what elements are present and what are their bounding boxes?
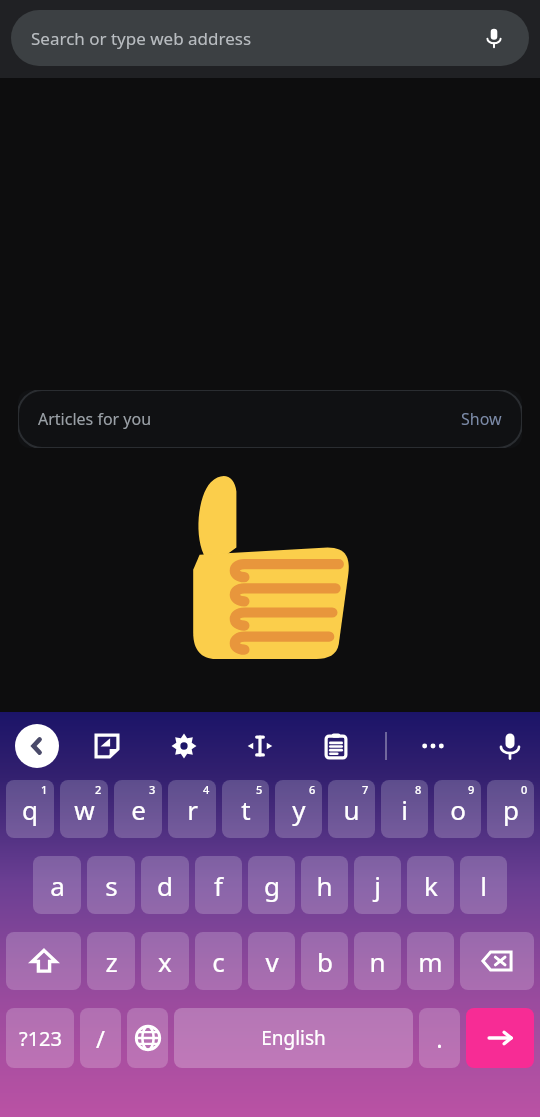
button[interactable]: Stickers <box>85 724 129 768</box>
staticText: a <box>50 868 65 903</box>
staticText: 6 <box>309 782 316 797</box>
staticText: / <box>96 1022 105 1055</box>
button[interactable]: Shift <box>6 932 81 990</box>
staticText: e <box>131 792 146 827</box>
button[interactable]: n <box>354 932 401 990</box>
button[interactable]: g <box>248 856 295 914</box>
button[interactable]: w <box>60 780 108 838</box>
button[interactable]: u <box>328 780 375 838</box>
button[interactable]: / <box>80 1008 121 1068</box>
staticText: 3 <box>149 782 156 797</box>
staticText: q <box>22 792 38 827</box>
button[interactable]: v <box>248 932 295 990</box>
staticText: r <box>187 792 198 827</box>
staticText: j <box>374 868 381 903</box>
staticText: i <box>401 792 408 827</box>
button[interactable]: h <box>301 856 348 914</box>
staticText: 9 <box>468 782 475 797</box>
button[interactable]: f <box>195 856 242 914</box>
staticText: o <box>450 792 466 827</box>
button[interactable]: d <box>141 856 189 914</box>
button[interactable]: z <box>87 932 135 990</box>
staticText: w <box>74 792 95 827</box>
button[interactable]: Move cursor <box>238 724 282 768</box>
staticText: n <box>369 944 386 979</box>
staticText: s <box>105 868 118 903</box>
button[interactable]: Clipboard <box>314 724 358 768</box>
staticText: ?123 <box>19 1025 62 1052</box>
button[interactable]: s <box>87 856 135 914</box>
button[interactable]: p <box>487 780 534 838</box>
button[interactable]: Backspace <box>460 932 534 990</box>
staticText: 4 <box>203 782 210 797</box>
button[interactable]: More options <box>411 724 455 768</box>
button[interactable]: . <box>419 1008 460 1068</box>
button[interactable]: j <box>354 856 401 914</box>
staticText: . <box>436 1022 443 1055</box>
button[interactable]: English <box>174 1008 413 1068</box>
staticText: f <box>214 868 223 903</box>
button[interactable]: k <box>407 856 454 914</box>
button[interactable]: Search or type web address <box>11 10 529 66</box>
staticText: 8 <box>415 782 422 797</box>
staticText: 1 <box>41 782 48 797</box>
button[interactable]: Enter <box>466 1008 534 1068</box>
button[interactable]: Voice input <box>488 724 532 768</box>
button[interactable]: r <box>168 780 216 838</box>
staticText: English <box>261 1025 326 1051</box>
staticText: l <box>480 868 487 903</box>
staticText: b <box>317 944 333 979</box>
button[interactable]: t <box>222 780 269 838</box>
button[interactable]: b <box>301 932 348 990</box>
button[interactable]: l <box>460 856 507 914</box>
staticText: 5 <box>256 782 263 797</box>
button[interactable]: Back <box>15 724 59 768</box>
staticText: g <box>264 868 280 903</box>
staticText: Articles for you <box>38 408 152 430</box>
staticText: m <box>418 944 443 979</box>
staticText: y <box>292 792 306 827</box>
staticText: t <box>241 792 251 827</box>
staticText: p <box>503 792 519 827</box>
button[interactable]: y <box>275 780 322 838</box>
button[interactable]: Articles for you <box>18 390 522 448</box>
staticText: c <box>212 944 225 979</box>
staticText: v <box>265 944 279 979</box>
button[interactable]: a <box>33 856 81 914</box>
staticText: 0 <box>521 782 528 797</box>
staticText: d <box>157 868 173 903</box>
button[interactable]: x <box>141 932 189 990</box>
staticText: u <box>343 792 360 827</box>
staticText: k <box>424 868 438 903</box>
staticText: 7 <box>362 782 369 797</box>
button[interactable]: Change language <box>127 1008 168 1068</box>
button[interactable]: ?123 <box>6 1008 74 1068</box>
staticText: 2 <box>95 782 102 797</box>
staticText: h <box>316 868 333 903</box>
button[interactable]: m <box>407 932 454 990</box>
staticText: Show <box>461 408 502 430</box>
staticText: Search or type web address <box>31 27 252 50</box>
staticText: x <box>158 944 172 979</box>
button[interactable]: i <box>381 780 428 838</box>
button[interactable]: o <box>434 780 481 838</box>
staticText: z <box>105 944 118 979</box>
button[interactable]: Voice search <box>477 21 511 55</box>
button[interactable]: Settings <box>162 724 206 768</box>
button[interactable]: e <box>114 780 162 838</box>
button[interactable]: q <box>6 780 54 838</box>
button[interactable]: c <box>195 932 242 990</box>
